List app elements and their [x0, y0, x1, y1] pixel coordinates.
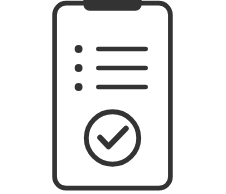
button[interactable]: Mobile checklist completed illustration [0, 0, 226, 194]
